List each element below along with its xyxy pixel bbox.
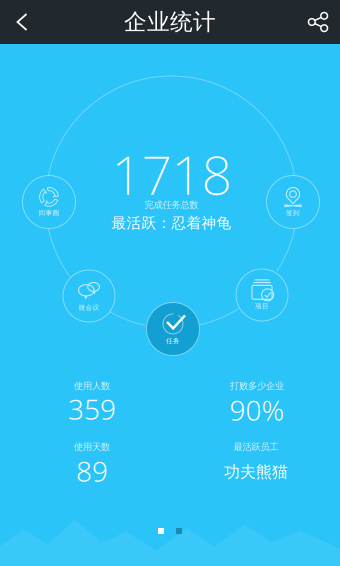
staticText: 最活跃员工 (233, 441, 278, 453)
staticText: 项目 (255, 302, 269, 310)
staticText: 同事圈 (38, 209, 59, 217)
staticText: 使用人数 (74, 380, 110, 392)
staticText: 使用天数 (74, 441, 110, 453)
staticText: 90% (229, 391, 284, 429)
button[interactable]: 同事圈 (22, 175, 75, 228)
button[interactable]: Share (296, 0, 340, 44)
staticText: 最活跃：忍着神龟 (111, 214, 231, 232)
staticText: 359 (68, 390, 116, 428)
staticText: 完成任务总数 (144, 199, 198, 211)
staticText: 签到 (286, 209, 300, 217)
staticText: 89 (76, 452, 108, 490)
button[interactable]: 微会议 (63, 270, 115, 322)
staticText: 打败多少企业 (230, 380, 284, 392)
button[interactable]: 项目 (236, 269, 288, 321)
staticText: 1718 (111, 139, 231, 209)
button[interactable]: 签到 (266, 175, 319, 228)
staticText: 企业统计 (124, 8, 216, 36)
staticText: 微会议 (78, 303, 99, 312)
button[interactable]: Back (0, 0, 44, 44)
staticText: 任务 (166, 337, 180, 345)
staticText: 功夫熊猫 (224, 462, 288, 482)
button[interactable]: 任务 (146, 302, 199, 355)
